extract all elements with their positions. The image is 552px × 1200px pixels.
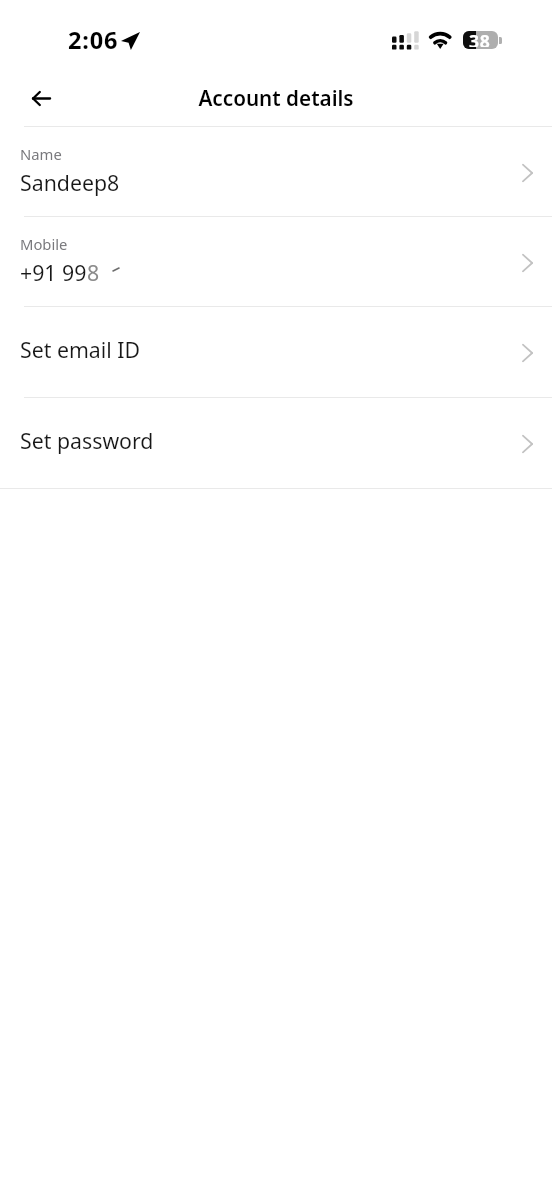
staticText: Set email ID — [20, 335, 141, 364]
button[interactable]: Set password — [0, 397, 552, 488]
button[interactable]: Name — [0, 126, 552, 217]
staticText: 38 — [469, 31, 491, 47]
staticText: 2:06 — [68, 24, 119, 56]
staticText: +91 99 — [20, 258, 87, 287]
staticText: Account details — [198, 84, 354, 112]
button[interactable]: Back — [9, 74, 73, 122]
button[interactable]: Set email ID — [0, 306, 552, 397]
staticText: Set password — [20, 426, 154, 455]
button[interactable]: Mobile — [0, 216, 552, 307]
staticText: Mobile — [20, 234, 68, 254]
staticText: Sandeep8 — [20, 168, 120, 197]
staticText: Name — [20, 144, 62, 164]
staticText: 8 — [87, 258, 100, 287]
